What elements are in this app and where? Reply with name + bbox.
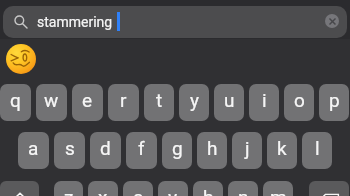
button[interactable]: a	[18, 132, 49, 169]
staticText: c	[133, 186, 143, 196]
button[interactable]: d	[90, 132, 121, 169]
button[interactable]: j	[232, 132, 262, 169]
button[interactable]: k	[267, 132, 297, 169]
staticText: b	[203, 186, 214, 196]
button[interactable]: Backspace	[309, 181, 349, 196]
staticText: e	[82, 89, 93, 111]
staticText: d	[100, 137, 111, 159]
button[interactable]: Woozy face emoji suggestion	[6, 44, 36, 74]
button[interactable]: z	[54, 181, 83, 196]
button[interactable]: p	[319, 84, 349, 121]
staticText: p	[329, 89, 340, 111]
staticText: j	[245, 137, 250, 159]
button[interactable]: u	[214, 84, 244, 121]
button[interactable]: b	[193, 181, 223, 196]
staticText: h	[207, 137, 218, 159]
button[interactable]: s	[54, 132, 85, 169]
button[interactable]: n	[228, 181, 258, 196]
staticText: stammering	[37, 14, 113, 30]
staticText: s	[65, 137, 75, 159]
button[interactable]: Shift	[0, 181, 39, 196]
staticText: f	[138, 137, 145, 159]
staticText: t	[156, 89, 163, 111]
staticText: n	[238, 186, 249, 196]
button[interactable]: h	[197, 132, 227, 169]
staticText: y	[190, 89, 199, 111]
staticText: x	[98, 186, 108, 196]
button[interactable]: y	[179, 84, 209, 121]
staticText: r	[120, 89, 127, 111]
button[interactable]: q	[0, 84, 31, 121]
staticText: z	[64, 186, 74, 196]
staticText: m	[270, 186, 287, 196]
staticText: l	[315, 137, 320, 159]
staticText: k	[277, 137, 287, 159]
button[interactable]: t	[144, 84, 174, 121]
button[interactable]: w	[36, 84, 67, 121]
button[interactable]: x	[88, 181, 118, 196]
other: Search	[14, 15, 28, 29]
button[interactable]: e	[72, 84, 103, 121]
button[interactable]: l	[302, 132, 332, 169]
button[interactable]: Search	[3, 6, 347, 38]
button[interactable]: v	[158, 181, 188, 196]
button[interactable]: g	[162, 132, 192, 169]
button[interactable]: Clear search	[325, 14, 339, 28]
staticText: g	[172, 137, 183, 159]
button[interactable]: r	[108, 84, 139, 121]
staticText: a	[28, 137, 39, 159]
button[interactable]: i	[249, 84, 279, 121]
staticText: q	[10, 89, 21, 111]
button[interactable]: m	[263, 181, 293, 196]
staticText: w	[44, 89, 59, 111]
button[interactable]: o	[284, 84, 314, 121]
staticText: v	[168, 186, 178, 196]
staticText: u	[224, 89, 235, 111]
staticText: i	[262, 89, 267, 111]
button[interactable]: f	[126, 132, 157, 169]
staticText: o	[294, 89, 305, 111]
button[interactable]: c	[123, 181, 153, 196]
